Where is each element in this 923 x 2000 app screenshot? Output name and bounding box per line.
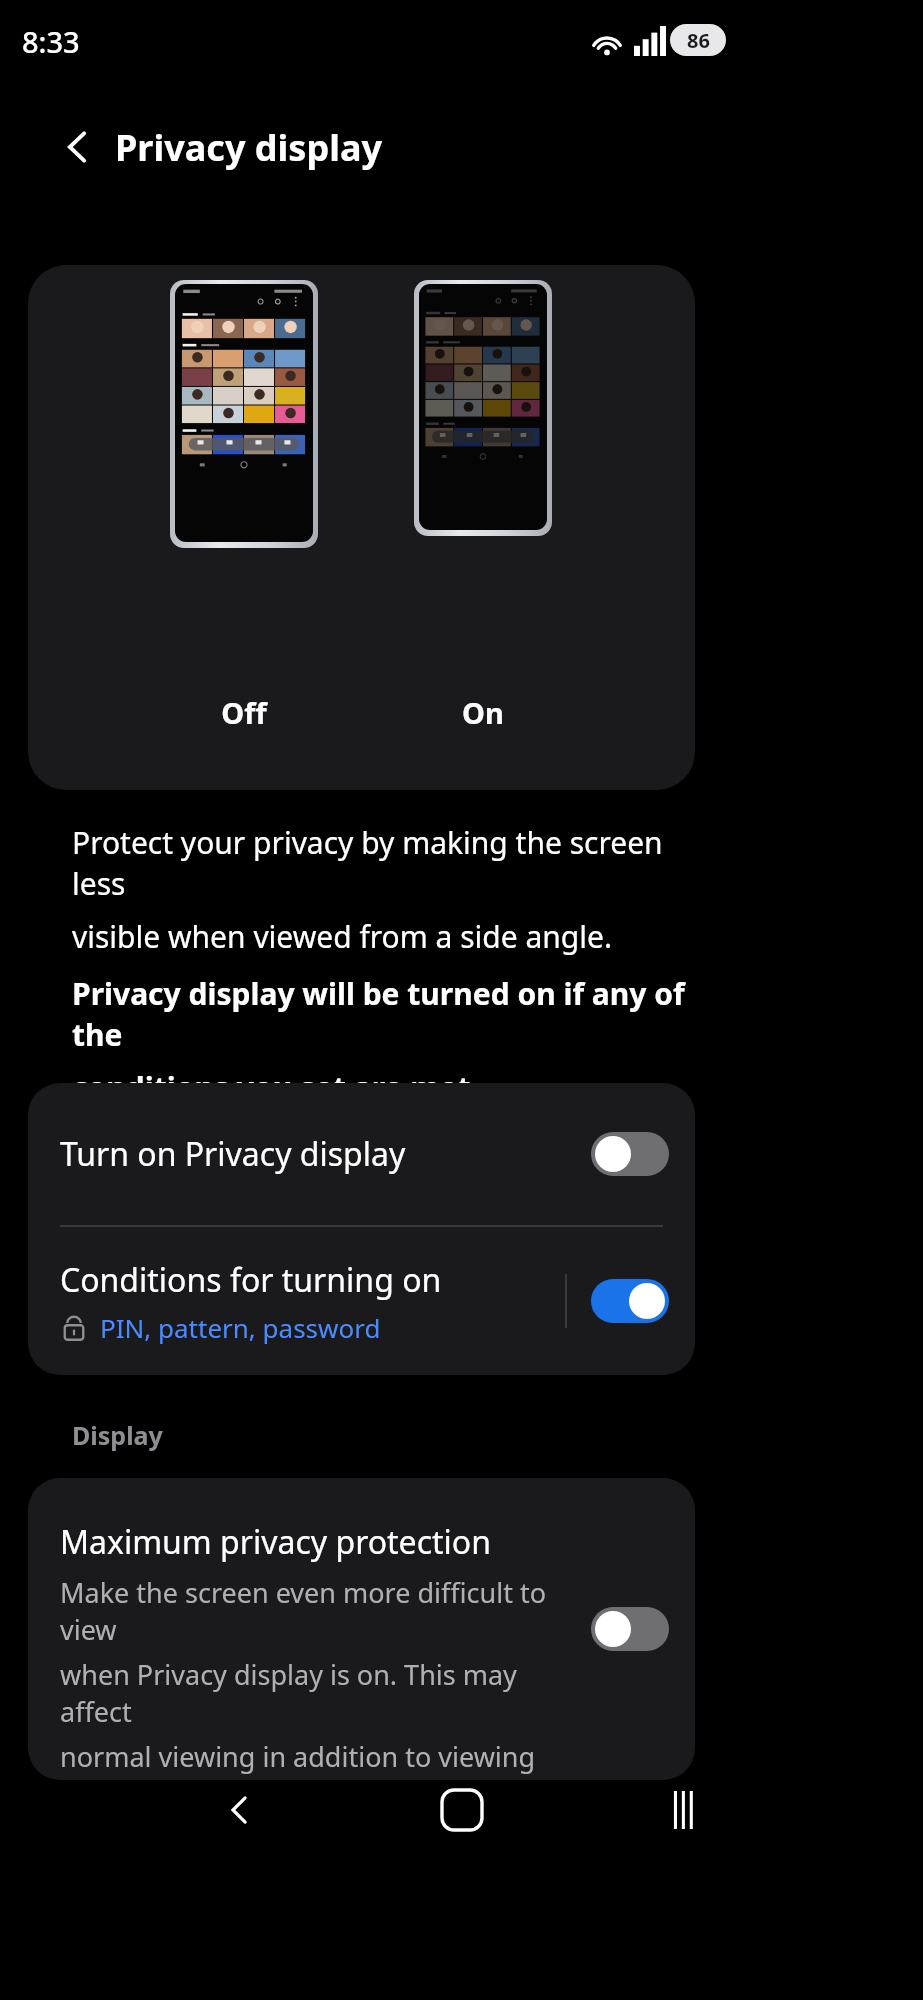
staticText: Maximum privacy protection	[60, 1520, 491, 1564]
button[interactable]: Back	[190, 1760, 290, 1860]
staticText: Protect your privacy by making the scree…	[72, 822, 712, 904]
staticText: normal viewing in addition to viewing fr…	[60, 1738, 550, 1780]
staticText: Privacy display	[115, 123, 383, 172]
button[interactable]: Home	[412, 1760, 512, 1860]
staticText: Off	[170, 693, 318, 732]
button[interactable]: Back	[40, 108, 116, 186]
staticText: On	[414, 693, 552, 732]
staticText: Privacy display will be turned on if any…	[72, 973, 712, 1055]
button[interactable]: Turn on Privacy display	[28, 1083, 695, 1225]
staticText: Turn on Privacy display	[60, 1132, 591, 1176]
staticText: 86	[687, 27, 710, 54]
staticText: 8:33	[22, 22, 80, 61]
button[interactable]: Toggle off	[591, 1607, 669, 1651]
button[interactable]: Maximum privacy protection	[28, 1478, 695, 1780]
button[interactable]: Toggle off	[591, 1132, 669, 1176]
button[interactable]: Conditions for turning on	[28, 1227, 695, 1375]
button[interactable]: Toggle on	[591, 1279, 669, 1323]
staticText: visible when viewed from a side angle.	[72, 916, 612, 957]
staticText: Conditions for turning on	[60, 1258, 442, 1302]
staticText: conditions you set are met.	[72, 1067, 479, 1108]
staticText: Display	[72, 1418, 163, 1452]
staticText: PIN, pattern, password	[100, 1310, 381, 1345]
staticText: when Privacy display is on. This may aff…	[60, 1656, 550, 1730]
staticText: Make the screen even more difficult to v…	[60, 1574, 550, 1648]
button[interactable]: Recent apps	[634, 1760, 734, 1860]
